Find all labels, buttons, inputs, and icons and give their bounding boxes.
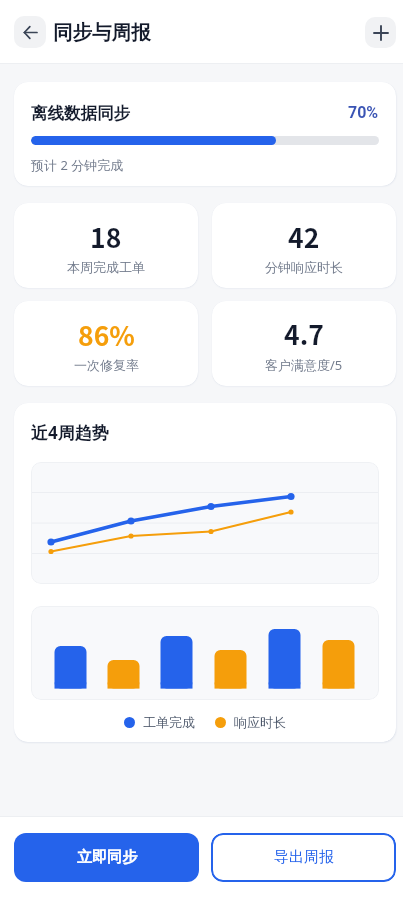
staticText: 响应时长 <box>234 714 286 730</box>
staticText: 4.7 <box>284 314 324 352</box>
staticText: 导出周报 <box>274 848 334 867</box>
staticText: 本周完成工单 <box>67 259 145 275</box>
staticText: 86% <box>78 315 135 353</box>
staticText: 预计 2 分钟完成 <box>31 156 124 174</box>
staticText: 客户满意度/5 <box>265 356 343 374</box>
button[interactable]: 4.7 <box>212 301 396 386</box>
staticText: 一次修复率 <box>74 357 139 373</box>
staticText: 18 <box>90 217 122 255</box>
staticText: 工单完成 <box>143 714 195 730</box>
button[interactable]: 导出周报 <box>211 833 396 882</box>
staticText: 近4周趋势 <box>31 421 109 444</box>
button[interactable]: 18 <box>14 203 198 288</box>
button[interactable]: 立即同步 <box>14 833 199 882</box>
button[interactable]: 86% <box>14 301 198 386</box>
button[interactable]: Back <box>14 16 46 48</box>
staticText: 42 <box>288 217 320 255</box>
staticText: 同步与周报 <box>53 20 151 45</box>
button[interactable]: 42 <box>212 203 396 288</box>
staticText: 分钟响应时长 <box>265 259 343 275</box>
button[interactable]: Add <box>365 17 396 48</box>
staticText: 离线数据同步 <box>31 103 130 124</box>
staticText: 70% <box>348 103 379 122</box>
staticText: 立即同步 <box>77 848 137 867</box>
